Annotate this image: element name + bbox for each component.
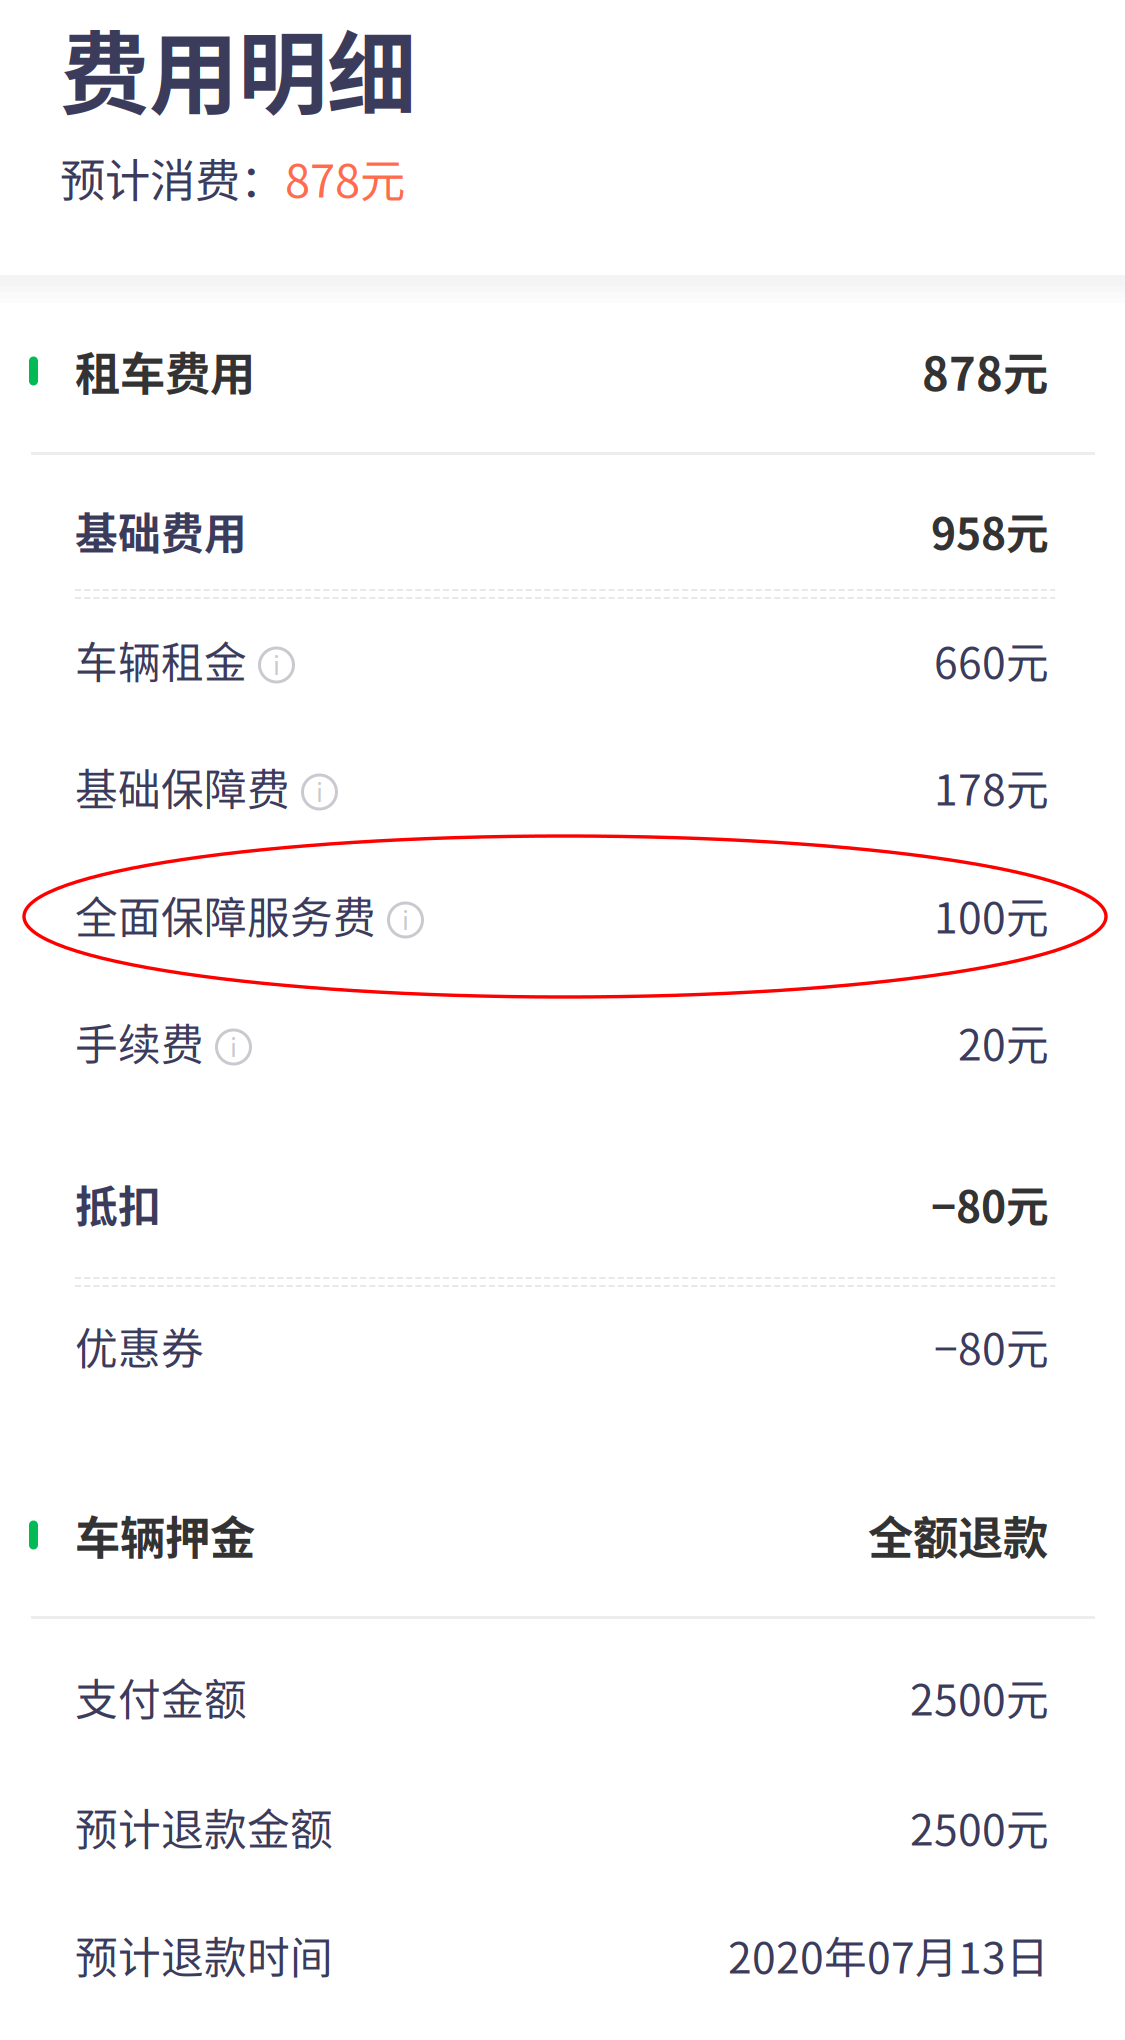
staticText: 178元	[934, 756, 1049, 818]
staticText: 支付金额	[75, 1666, 247, 1728]
staticText: 租车费用	[75, 338, 255, 404]
staticText: 车辆押金	[75, 1502, 255, 1568]
staticText: 20元	[958, 1011, 1049, 1073]
staticText: 100元	[934, 884, 1049, 946]
button[interactable]: 租车费用	[29, 348, 1048, 394]
staticText: 车辆租金	[75, 629, 247, 691]
staticText: 预计消费：	[60, 145, 285, 211]
staticText: 抵扣	[75, 1173, 161, 1235]
button[interactable]: 手续费	[75, 1020, 1049, 1064]
button[interactable]: 基础保障费	[75, 765, 1049, 809]
button[interactable]: 全面保障服务费	[75, 893, 1049, 937]
staticText: i	[402, 901, 409, 937]
staticText: 全面保障服务费	[75, 884, 376, 946]
staticText: 2020年07月13日	[728, 1924, 1049, 1986]
staticText: 手续费	[75, 1011, 204, 1073]
staticText: −80元	[931, 1173, 1049, 1235]
staticText: 基础费用	[75, 500, 247, 562]
staticText: 预计退款金额	[75, 1796, 333, 1858]
staticText: 费用明细	[60, 3, 416, 132]
staticText: 优惠券	[75, 1315, 204, 1377]
staticText: i	[230, 1028, 237, 1064]
staticText: 660元	[934, 629, 1049, 691]
staticText: 2500元	[910, 1666, 1049, 1728]
button[interactable]: 车辆押金	[29, 1512, 1048, 1558]
staticText: 全额退款	[868, 1502, 1048, 1568]
staticText: −80元	[934, 1315, 1049, 1377]
staticText: 2500元	[910, 1796, 1049, 1858]
staticText: 预计退款时间	[75, 1924, 333, 1986]
staticText: 878元	[922, 338, 1048, 404]
staticText: 基础保障费	[75, 756, 290, 818]
staticText: i	[273, 646, 280, 682]
staticText: 878元	[285, 145, 405, 211]
button[interactable]: 车辆租金	[75, 638, 1049, 682]
staticText: 958元	[931, 500, 1049, 562]
staticText: i	[316, 773, 323, 809]
